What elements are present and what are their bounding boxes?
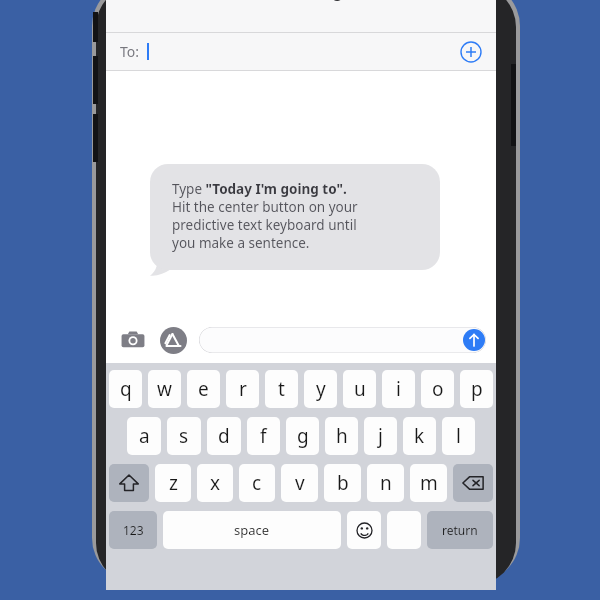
staticText: 123 <box>123 522 144 538</box>
button[interactable]: v <box>281 464 318 502</box>
staticText: k <box>414 423 425 449</box>
button[interactable]: Send <box>199 327 486 353</box>
button[interactable]: e <box>187 370 220 408</box>
button[interactable]: u <box>343 370 376 408</box>
staticText: h <box>336 423 348 449</box>
staticText: c <box>252 470 262 496</box>
staticText: d <box>218 423 230 449</box>
staticText: p <box>471 376 483 402</box>
staticText: j <box>378 423 383 449</box>
staticText: s <box>179 423 189 449</box>
button[interactable]: Shift <box>109 464 149 502</box>
button[interactable]: 123 <box>109 511 157 549</box>
staticText: return <box>442 522 478 538</box>
button[interactable]: Camera <box>118 325 148 355</box>
button[interactable]: Send <box>463 329 485 351</box>
button[interactable]: b <box>324 464 361 502</box>
staticText: a <box>139 423 150 449</box>
staticText: t <box>278 376 285 402</box>
button[interactable]: f <box>247 417 280 455</box>
button[interactable]: Type "Today I'm going to". Hit the cente… <box>150 164 440 270</box>
staticText: Type "Today I'm going to". Hit the cente… <box>172 180 358 252</box>
button[interactable]: l <box>442 417 475 455</box>
staticText: b <box>337 470 349 496</box>
button[interactable]: h <box>325 417 358 455</box>
staticText: l <box>456 423 461 449</box>
button[interactable]: w <box>148 370 181 408</box>
button[interactable]: y <box>304 370 337 408</box>
button[interactable]: x <box>197 464 233 502</box>
staticText: x <box>210 470 221 496</box>
button[interactable]: Dictate <box>387 511 421 549</box>
staticText: z <box>169 470 178 496</box>
staticText: New Message <box>250 0 352 2</box>
button[interactable]: o <box>421 370 454 408</box>
button[interactable]: s <box>167 417 201 455</box>
button[interactable]: t <box>265 370 298 408</box>
staticText: To: <box>120 42 140 61</box>
staticText: m <box>420 470 438 496</box>
button[interactable]: z <box>155 464 191 502</box>
button[interactable]: a <box>127 417 161 455</box>
staticText: w <box>157 376 172 402</box>
button[interactable]: m <box>410 464 447 502</box>
button[interactable]: d <box>207 417 241 455</box>
button[interactable]: g <box>286 417 319 455</box>
button[interactable]: c <box>239 464 275 502</box>
staticText: e <box>198 376 209 402</box>
staticText: r <box>239 376 247 402</box>
staticText: o <box>432 376 444 402</box>
button[interactable]: i <box>382 370 415 408</box>
button[interactable]: p <box>460 370 493 408</box>
staticText: g <box>297 423 309 449</box>
button[interactable]: r <box>226 370 259 408</box>
button[interactable]: k <box>403 417 436 455</box>
staticText: n <box>380 470 392 496</box>
staticText: f <box>260 423 267 449</box>
staticText: v <box>295 470 305 496</box>
button[interactable]: n <box>367 464 404 502</box>
button[interactable]: App Store <box>160 327 187 354</box>
staticText: q <box>120 376 132 402</box>
button[interactable]: return <box>427 511 493 549</box>
staticText: u <box>354 376 366 402</box>
button[interactable]: Add contact <box>460 41 482 63</box>
button[interactable]: q <box>109 370 142 408</box>
staticText: space <box>234 521 270 539</box>
button[interactable]: Backspace <box>453 464 493 502</box>
staticText: i <box>396 376 401 402</box>
button[interactable]: Emoji <box>347 511 381 549</box>
button[interactable]: j <box>364 417 397 455</box>
button[interactable]: To: <box>106 33 496 70</box>
button[interactable]: space <box>163 511 341 549</box>
staticText: y <box>316 376 326 402</box>
